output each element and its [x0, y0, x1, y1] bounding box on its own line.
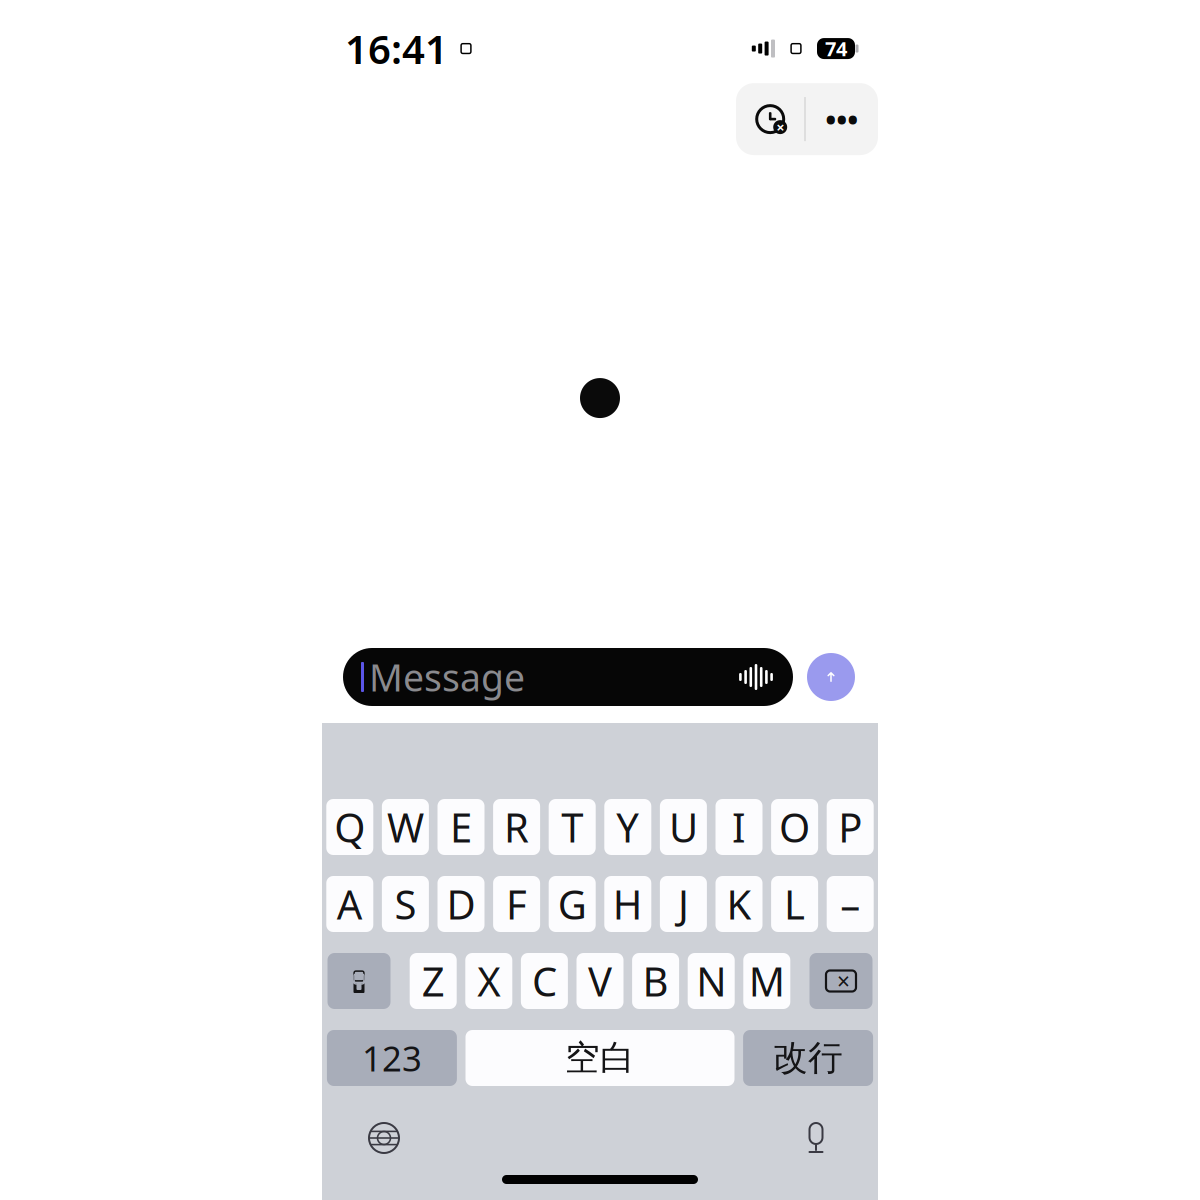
staticText: F — [506, 877, 527, 930]
button[interactable]: Z — [410, 953, 457, 1009]
staticText: A — [337, 877, 363, 930]
button[interactable]: 123 — [327, 1030, 457, 1086]
staticText: 16:41 — [345, 22, 448, 75]
staticText: Message — [369, 652, 525, 702]
staticText: U — [669, 800, 698, 853]
button[interactable]: B — [632, 953, 679, 1009]
button[interactable]: V — [576, 953, 623, 1009]
staticText: I — [732, 800, 746, 853]
staticText: N — [696, 954, 726, 1007]
staticText: S — [394, 877, 416, 930]
staticText: ••• — [825, 100, 858, 139]
staticText: Y — [616, 800, 639, 853]
button[interactable]: L — [771, 876, 818, 932]
staticText: Q — [334, 800, 365, 853]
staticText: 空白 — [565, 1037, 635, 1079]
button[interactable]: S — [382, 876, 429, 932]
button[interactable]: Switch keyboard — [355, 1112, 413, 1164]
button[interactable]: Disappearing messages — [736, 83, 804, 155]
button[interactable]: R — [493, 799, 540, 855]
staticText: J — [678, 877, 689, 930]
staticText: – — [840, 877, 860, 930]
staticText: D — [446, 877, 475, 930]
button[interactable]: H — [604, 876, 651, 932]
staticText: × — [837, 966, 850, 996]
staticText: W — [387, 800, 424, 853]
staticText: 123 — [362, 1035, 422, 1081]
button[interactable]: Record voice message — [733, 657, 779, 697]
staticText: H — [613, 877, 643, 930]
staticText: K — [726, 877, 751, 930]
button[interactable]: Dictate — [787, 1112, 845, 1164]
staticText: 改行 — [773, 1037, 843, 1079]
button[interactable]: M — [743, 953, 790, 1009]
button[interactable]: Delete — [809, 953, 872, 1009]
button[interactable]: Shift — [327, 953, 390, 1009]
staticText: P — [838, 800, 862, 853]
button[interactable]: I — [715, 799, 762, 855]
button[interactable]: Send — [805, 651, 857, 703]
staticText: 74 — [825, 35, 847, 62]
button[interactable]: F — [493, 876, 540, 932]
staticText: M — [749, 954, 785, 1007]
staticText: T — [561, 800, 583, 853]
staticText: O — [779, 800, 810, 853]
button[interactable]: – — [827, 876, 874, 932]
button[interactable]: P — [827, 799, 874, 855]
button[interactable]: D — [437, 876, 484, 932]
staticText: × — [776, 117, 784, 137]
button[interactable]: G — [549, 876, 596, 932]
button[interactable]: W — [382, 799, 429, 855]
button[interactable]: E — [437, 799, 484, 855]
button[interactable]: A — [326, 876, 373, 932]
staticText: E — [450, 800, 472, 853]
button[interactable]: J — [660, 876, 707, 932]
button[interactable]: O — [771, 799, 818, 855]
button[interactable]: More options — [806, 83, 878, 155]
button[interactable]: 改行 — [743, 1030, 873, 1086]
button[interactable]: C — [521, 953, 568, 1009]
button[interactable]: N — [688, 953, 735, 1009]
staticText: C — [532, 954, 557, 1007]
button[interactable]: Y — [604, 799, 651, 855]
button[interactable]: T — [549, 799, 596, 855]
staticText: B — [643, 954, 669, 1007]
staticText: G — [558, 877, 587, 930]
staticText: X — [477, 954, 500, 1007]
staticText: L — [784, 877, 805, 930]
button[interactable]: U — [660, 799, 707, 855]
button[interactable]: X — [465, 953, 512, 1009]
staticText: R — [504, 800, 529, 853]
staticText: Z — [422, 954, 445, 1007]
staticText: V — [588, 954, 612, 1007]
button[interactable]: Q — [326, 799, 373, 855]
button[interactable]: 空白 — [465, 1030, 734, 1086]
button[interactable]: K — [715, 876, 762, 932]
